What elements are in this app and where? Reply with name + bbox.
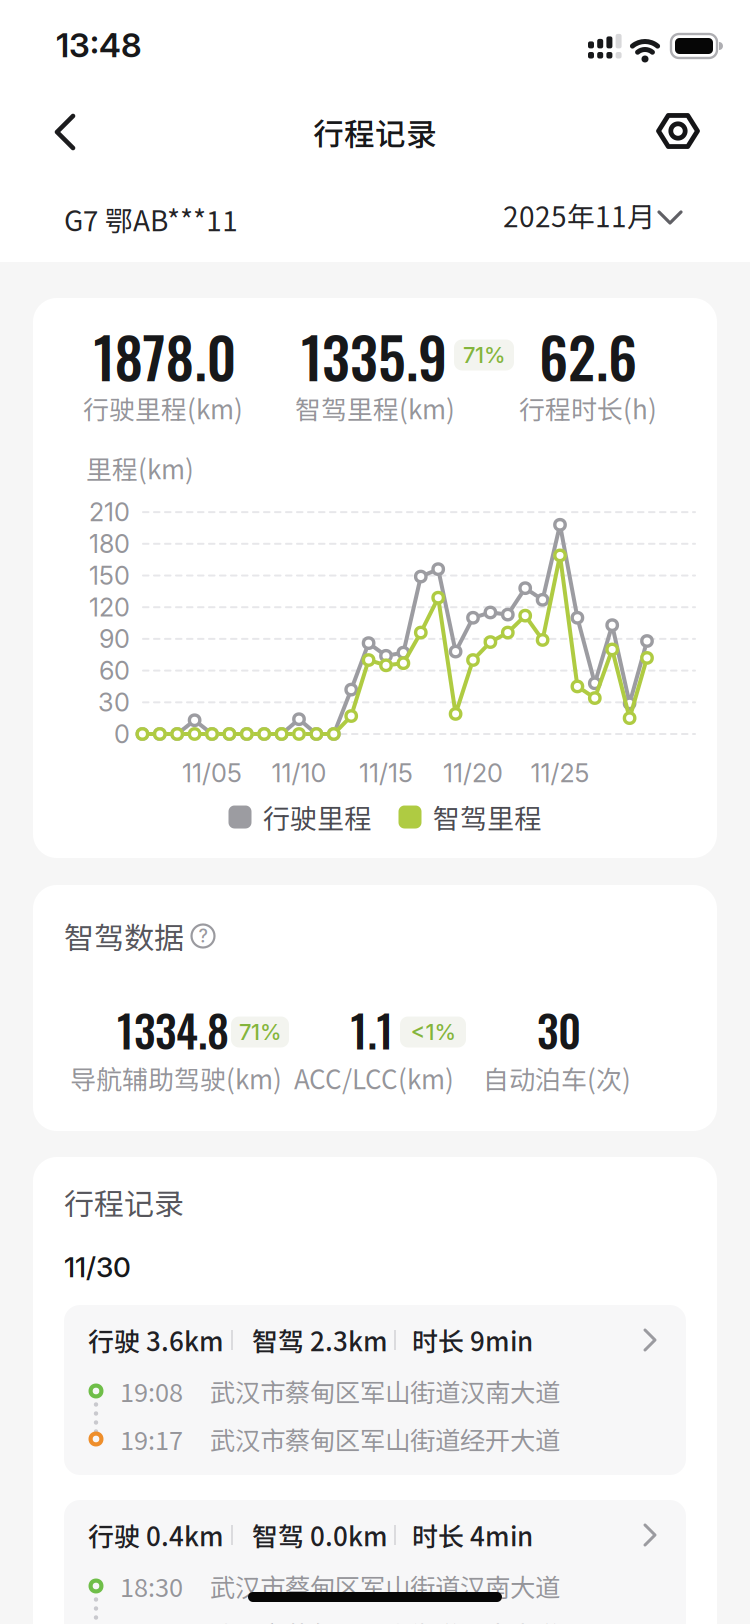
staticText: 18:30 — [120, 1568, 183, 1604]
staticText: 30 — [537, 998, 581, 1062]
staticText: 150 — [89, 560, 130, 591]
staticText: 1335.9 — [301, 314, 447, 397]
button[interactable]: 行驶 3.6km — [64, 1305, 686, 1475]
staticText: 武汉市蔡甸区军山街道汉南大道 — [210, 1373, 560, 1409]
staticText: 11/10 — [271, 758, 326, 788]
staticText: <1% — [410, 1019, 455, 1045]
staticText: 行驶 0.4km — [88, 1516, 224, 1554]
staticText: 19:08 — [120, 1373, 183, 1409]
staticText: 时长 9min — [412, 1321, 533, 1359]
button[interactable]: 智驾数据说明 — [189, 922, 217, 950]
staticText: 智驾里程(km) — [295, 389, 455, 427]
staticText: 30 — [98, 687, 130, 718]
staticText: 1.1 — [350, 998, 393, 1062]
staticText: 行驶 3.6km — [88, 1321, 224, 1359]
staticText: 智驾数据 — [64, 914, 184, 958]
staticText: 1878.0 — [93, 314, 236, 397]
staticText: 自动泊车(次) — [483, 1059, 631, 1097]
staticText: 60 — [99, 655, 130, 686]
staticText: 90 — [99, 624, 130, 654]
staticText: 时长 4min — [412, 1516, 533, 1554]
staticText: ? — [198, 925, 207, 947]
staticText: 1334.8 — [117, 998, 229, 1062]
button[interactable]: Settings — [648, 101, 708, 161]
staticText: G7 鄂AB***11 — [64, 199, 238, 239]
staticText: 里程(km) — [86, 449, 194, 487]
staticText: 13:48 — [56, 25, 142, 65]
staticText: 智驾 2.3km — [252, 1321, 388, 1359]
staticText: 11/30 — [64, 1250, 131, 1284]
staticText: 71% — [463, 342, 505, 368]
staticText: 行程时长(h) — [519, 389, 657, 427]
staticText: 0 — [114, 719, 130, 749]
staticText: 11/05 — [182, 758, 242, 788]
staticText: 19:17 — [120, 1421, 183, 1457]
staticText: 行驶里程(km) — [83, 389, 243, 427]
staticText: 行程记录 — [64, 1180, 184, 1224]
staticText: 11/25 — [530, 758, 589, 788]
staticText: 120 — [89, 592, 130, 623]
button[interactable]: 行驶 0.4km — [64, 1500, 686, 1624]
staticText: 行程记录 — [313, 110, 437, 154]
button[interactable]: 2025年11月 — [503, 203, 689, 235]
staticText: 武汉市蔡甸区军山街道经开大道 — [210, 1421, 560, 1457]
staticText: 智驾里程 — [433, 797, 541, 837]
staticText: 11/20 — [443, 758, 503, 788]
staticText: ACC/LCC(km) — [294, 1059, 454, 1097]
staticText: 210 — [89, 497, 130, 527]
staticText: 62.6 — [539, 314, 637, 397]
staticText: 2025年11月 — [503, 195, 655, 235]
staticText: 行驶里程 — [263, 797, 371, 837]
button[interactable]: Back — [40, 102, 100, 162]
staticText: 武汉市蔡甸区军山街道汉南大道 — [210, 1568, 560, 1604]
staticText: 71% — [239, 1019, 281, 1045]
staticText: 180 — [89, 528, 130, 559]
staticText: 11/15 — [359, 758, 413, 788]
staticText: 智驾 0.0km — [252, 1516, 388, 1554]
staticText: 导航辅助驾驶(km) — [70, 1059, 282, 1097]
